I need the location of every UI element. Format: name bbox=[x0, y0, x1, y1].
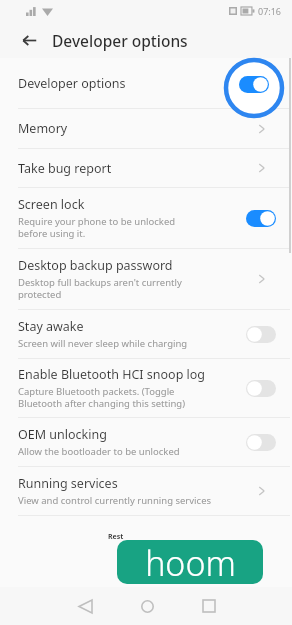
button[interactable]: Back bbox=[70, 591, 100, 621]
button[interactable]: Desktop backup password bbox=[0, 249, 292, 309]
button[interactable]: Running services bbox=[0, 467, 292, 515]
staticText: Memory bbox=[18, 120, 68, 137]
staticText: Enable Bluetooth HCI snoop log bbox=[18, 366, 206, 383]
staticText: Developer options bbox=[52, 30, 188, 51]
button[interactable]: OEM unlocking bbox=[0, 418, 292, 466]
staticText: Developer options bbox=[18, 75, 126, 92]
button[interactable]: Developer options bbox=[0, 58, 292, 108]
staticText: Rest bbox=[108, 532, 124, 542]
staticText: Desktop backup password bbox=[18, 257, 173, 274]
staticText: Stay awake bbox=[18, 318, 84, 335]
button[interactable]: Home bbox=[132, 591, 162, 621]
button[interactable]: Memory bbox=[0, 109, 292, 148]
button[interactable]: Toggle on bbox=[239, 76, 269, 93]
staticText: Desktop full backups aren't currently pr… bbox=[18, 276, 182, 301]
button[interactable]: Screen lock bbox=[0, 188, 292, 248]
staticText: View and control currently running servi… bbox=[18, 494, 212, 507]
button[interactable]: Stay awake bbox=[0, 310, 292, 358]
staticText: Screen will never sleep while charging bbox=[18, 337, 188, 350]
button[interactable]: Toggle off bbox=[246, 434, 276, 451]
button[interactable]: Toggle on bbox=[246, 75, 276, 92]
button[interactable]: Recent apps bbox=[194, 591, 224, 621]
staticText: Allow the bootloader to be unlocked bbox=[18, 445, 180, 458]
button[interactable]: Take bug report bbox=[0, 149, 292, 187]
button[interactable]: Toggle off bbox=[246, 326, 276, 343]
staticText: Screen lock bbox=[18, 196, 85, 213]
staticText: OEM unlocking bbox=[18, 426, 107, 443]
staticText: Running services bbox=[18, 475, 118, 492]
staticText: Capture Bluetooth packets. (Toggle Bluet… bbox=[18, 385, 185, 410]
staticText: 07:16 bbox=[258, 5, 282, 17]
staticText: hoom bbox=[145, 540, 236, 584]
button[interactable]: Toggle on bbox=[246, 210, 276, 227]
staticText: Take bug report bbox=[18, 160, 112, 177]
button[interactable]: Enable Bluetooth HCI snoop log bbox=[0, 359, 292, 417]
staticText: Require your phone to be unlocked before… bbox=[18, 215, 176, 240]
button[interactable]: Toggle off bbox=[246, 380, 276, 397]
button[interactable]: Back bbox=[16, 27, 42, 53]
